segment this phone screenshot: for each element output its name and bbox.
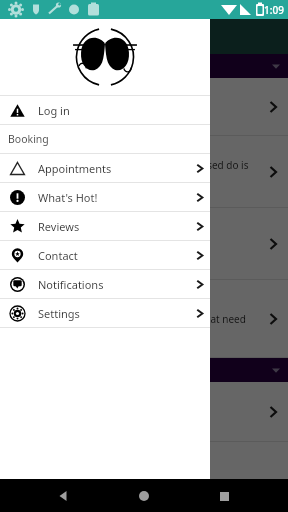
staticText: Reviews [38, 219, 195, 234]
button[interactable]: Lorem ipsum dolor sit amet are fat [0, 78, 288, 136]
button[interactable]: Notifications [0, 270, 210, 298]
staticText: What's Hot! [38, 190, 195, 205]
button[interactable]: Magna aliqua can also be ut enim areas t… [0, 280, 288, 358]
staticText: 1:09 [264, 3, 284, 17]
button[interactable]: Log in [0, 96, 210, 124]
staticText: Tempor incididunt arms, inner ut labore [12, 237, 200, 251]
staticText: Contact [38, 248, 195, 263]
other: Expand [272, 62, 280, 70]
staticText: Appointments [38, 161, 195, 176]
button[interactable]: Home [128, 480, 160, 512]
staticText: Booking [8, 132, 49, 146]
button[interactable]: Consectetur adipiscing areas such as eli… [0, 136, 288, 208]
button[interactable]: Expand [0, 54, 288, 78]
button[interactable]: Reviews [0, 212, 210, 240]
button[interactable]: Contact [0, 241, 210, 269]
button[interactable]: Expand [0, 358, 288, 382]
staticText: Log in [38, 103, 204, 118]
staticText: Magna aliqua can also be ut enim areas t… [12, 312, 246, 326]
button[interactable]: Settings [0, 299, 210, 327]
button[interactable]: Appointments [0, 154, 210, 182]
button[interactable]: Quis nostrud exercitation nsions have [0, 382, 288, 442]
staticText: Notifications [38, 277, 195, 292]
staticText: Settings [38, 306, 195, 321]
button[interactable]: Recent apps [208, 480, 240, 512]
staticText: Consectetur adipiscing areas such as eli… [12, 158, 254, 186]
staticText: Lorem ipsum dolor sit amet are fat [12, 100, 175, 114]
button[interactable]: Tempor incididunt arms, inner ut labore [0, 208, 288, 280]
button[interactable]: What's Hot! [0, 183, 210, 211]
other: Expand [272, 366, 280, 374]
button[interactable]: Back [48, 480, 80, 512]
